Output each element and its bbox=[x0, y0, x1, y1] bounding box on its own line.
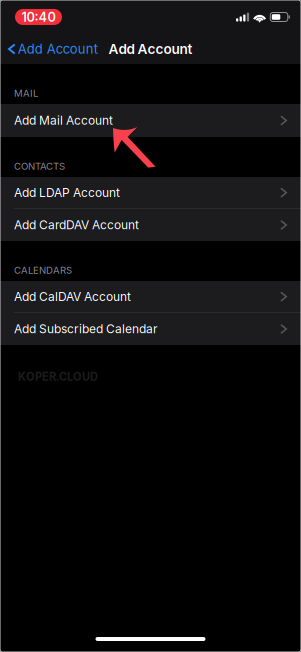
staticText: 10:40 bbox=[21, 9, 55, 25]
staticText: MAIL bbox=[14, 87, 38, 99]
staticText: Add CardDAV Account bbox=[14, 218, 139, 232]
staticText: KOPER.CLOUD bbox=[18, 370, 98, 383]
staticText: Add Account bbox=[18, 41, 98, 57]
staticText: Add Subscribed Calendar bbox=[14, 322, 158, 336]
staticText: Add CalDAV Account bbox=[14, 289, 131, 304]
staticText: Add LDAP Account bbox=[14, 185, 120, 200]
button[interactable]: Add CalDAV Account bbox=[0, 281, 301, 313]
button[interactable]: Add CardDAV Account bbox=[0, 209, 301, 241]
staticText: Add Mail Account bbox=[14, 113, 113, 128]
staticText: CONTACTS bbox=[14, 160, 65, 172]
button[interactable]: Add LDAP Account bbox=[0, 177, 301, 209]
button[interactable]: Add Mail Account bbox=[0, 104, 301, 137]
button[interactable]: Add Subscribed Calendar bbox=[0, 313, 301, 345]
button[interactable]: Add Account bbox=[0, 36, 104, 62]
staticText: CALENDARS bbox=[14, 264, 72, 276]
staticText: Add Account bbox=[108, 41, 192, 57]
